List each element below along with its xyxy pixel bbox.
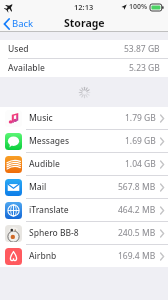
- button[interactable]: Available: [0, 59, 168, 77]
- button[interactable]: Airbnb: [0, 245, 168, 267]
- button[interactable]: Sphero BB-8: [0, 222, 168, 244]
- staticText: Available: [8, 62, 45, 74]
- staticText: 464.2 MB: [118, 204, 156, 216]
- staticText: 567.8 MB: [118, 181, 156, 193]
- staticText: Storage: [64, 16, 105, 30]
- staticText: 1.04 GB: [125, 158, 156, 170]
- button[interactable]: Used: [0, 40, 168, 58]
- staticText: 100%: [129, 2, 148, 12]
- button[interactable]: Messages: [0, 130, 168, 152]
- button[interactable]: Back: [0, 15, 38, 32]
- other: Loading: [79, 87, 90, 98]
- staticText: iTranslate: [29, 204, 69, 216]
- staticText: Music: [29, 112, 53, 124]
- staticText: Used: [8, 43, 29, 55]
- staticText: Mail: [29, 181, 47, 193]
- staticText: 5.23 GB: [129, 62, 160, 74]
- staticText: 240.5 MB: [118, 227, 156, 239]
- staticText: Audible: [29, 158, 60, 170]
- button[interactable]: iTranslate: [0, 199, 168, 221]
- staticText: 1.69 GB: [125, 135, 156, 147]
- staticText: 169.4 MB: [118, 250, 156, 262]
- button[interactable]: Mail: [0, 176, 168, 198]
- button[interactable]: Audible: [0, 153, 168, 175]
- staticText: 12:13: [74, 2, 94, 12]
- staticText: Airbnb: [29, 250, 57, 262]
- staticText: Sphero BB-8: [29, 227, 79, 239]
- staticText: 53.87 GB: [124, 43, 160, 55]
- staticText: Back: [12, 17, 34, 30]
- button[interactable]: Music: [0, 107, 168, 129]
- staticText: 1.79 GB: [125, 112, 156, 124]
- staticText: Messages: [29, 135, 70, 147]
